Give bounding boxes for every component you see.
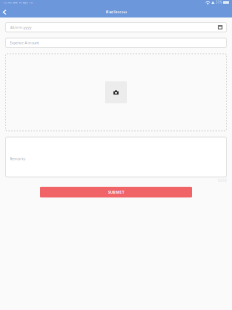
button[interactable]: dd-mm-yyyy bbox=[5, 22, 227, 32]
staticText: 0/250 bbox=[218, 179, 227, 182]
staticText: dd-mm-yyyy bbox=[9, 25, 31, 30]
button[interactable]: Remarks bbox=[5, 136, 227, 177]
staticText: 10:40 AM Fri Apr 16 bbox=[3, 1, 33, 4]
staticText: Remarks bbox=[9, 156, 25, 161]
staticText: Miscellaneous bbox=[105, 10, 126, 14]
staticText: SUBMIT bbox=[108, 189, 124, 195]
button[interactable]: SUBMIT bbox=[40, 187, 192, 197]
staticText: Expense Amount bbox=[9, 40, 38, 45]
staticText: 50% bbox=[216, 1, 222, 4]
button[interactable]: Add receipt photo bbox=[5, 53, 227, 131]
button[interactable]: Back bbox=[0, 5, 9, 17]
button[interactable]: Expense Amount bbox=[5, 37, 227, 48]
